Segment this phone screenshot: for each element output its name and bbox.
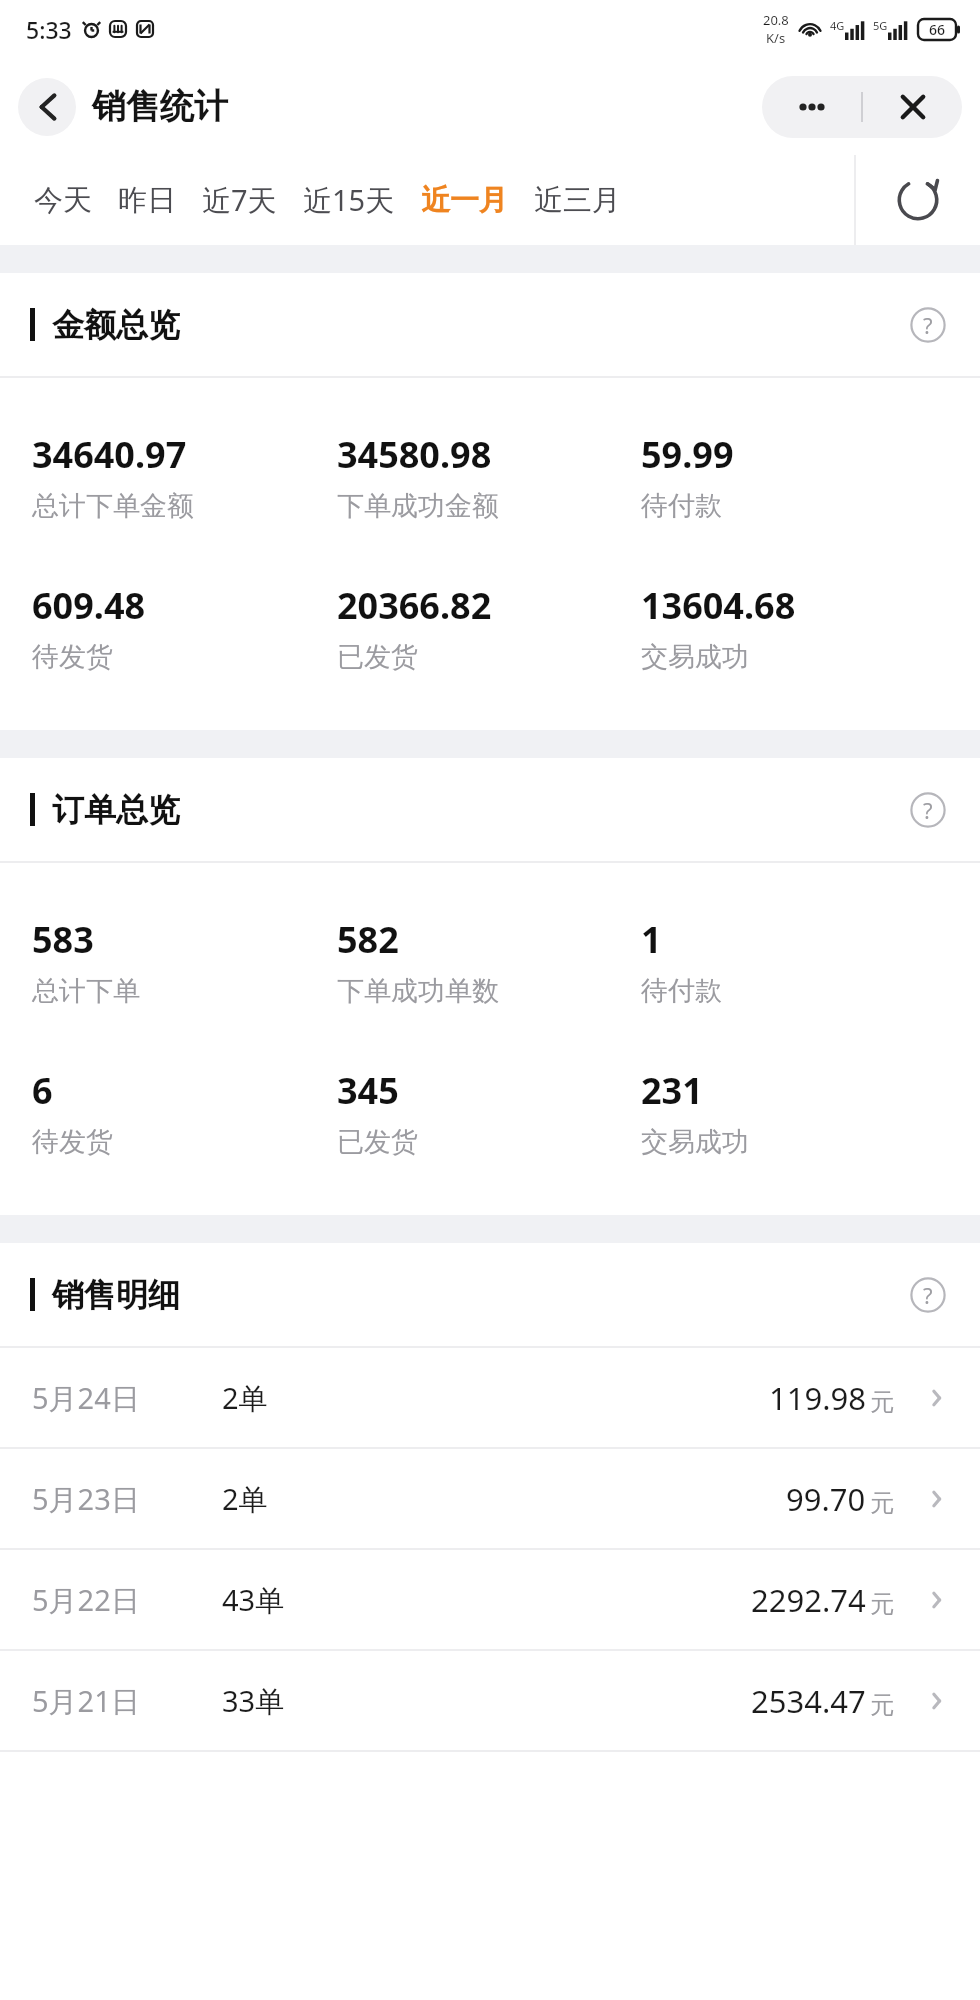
- staticText: 元: [870, 1589, 894, 1619]
- staticText: 34640.97: [32, 430, 187, 479]
- staticText: 近一月: [421, 182, 508, 219]
- button[interactable]: 5月22日: [0, 1550, 980, 1651]
- button[interactable]: Help: [906, 1273, 950, 1317]
- staticText: 下单成功金额: [337, 489, 499, 523]
- staticText: 元: [870, 1488, 894, 1518]
- staticText: 交易成功: [641, 1125, 749, 1159]
- button[interactable]: 今天: [34, 155, 92, 245]
- button[interactable]: Refresh: [856, 155, 980, 245]
- staticText: 元: [870, 1690, 894, 1720]
- staticText: 345: [337, 1066, 399, 1115]
- staticText: 金额总览: [52, 305, 180, 345]
- staticText: 583: [32, 915, 94, 964]
- staticText: 销售明细: [52, 1275, 180, 1315]
- button[interactable]: 近一月: [421, 155, 508, 245]
- button[interactable]: Help: [906, 303, 950, 347]
- staticText: 231: [641, 1066, 703, 1115]
- staticText: 已发货: [337, 640, 418, 674]
- staticText: 99.70: [786, 1478, 866, 1520]
- staticText: 总计下单金额: [32, 489, 194, 523]
- button[interactable]: 5月23日: [0, 1449, 980, 1550]
- staticText: 33单: [222, 1681, 452, 1721]
- staticText: ?: [923, 1280, 933, 1310]
- button[interactable]: 昨日: [118, 155, 176, 245]
- button[interactable]: Help: [906, 788, 950, 832]
- staticText: 近三月: [534, 182, 621, 219]
- staticText: 待发货: [32, 1125, 113, 1159]
- button[interactable]: 5月21日: [0, 1651, 980, 1752]
- staticText: 119.98: [769, 1377, 866, 1419]
- staticText: 582: [337, 915, 399, 964]
- staticText: 待发货: [32, 640, 113, 674]
- staticText: 总计下单: [32, 974, 140, 1008]
- staticText: 6: [32, 1066, 53, 1115]
- button[interactable]: 5月24日: [0, 1348, 980, 1449]
- staticText: 66: [929, 20, 946, 39]
- staticText: 已发货: [337, 1125, 418, 1159]
- staticText: 5月22日: [32, 1580, 222, 1620]
- staticText: 1: [641, 915, 662, 964]
- staticText: 5月24日: [32, 1378, 222, 1418]
- button[interactable]: 近三月: [534, 155, 621, 245]
- staticText: 5G: [873, 18, 888, 33]
- staticText: 20.8: [763, 11, 789, 29]
- staticText: 2单: [222, 1378, 452, 1418]
- button[interactable]: More options: [762, 76, 861, 138]
- staticText: 2292.74: [751, 1579, 866, 1621]
- staticText: K/s: [766, 29, 786, 47]
- staticText: 5:33: [26, 14, 72, 45]
- button[interactable]: 近7天: [202, 155, 277, 245]
- button[interactable]: 近15天: [303, 155, 395, 245]
- staticText: 43单: [222, 1580, 452, 1620]
- staticText: 59.99: [641, 430, 734, 479]
- staticText: 2534.47: [751, 1680, 866, 1722]
- staticText: 20366.82: [337, 581, 492, 630]
- staticText: 待付款: [641, 974, 722, 1008]
- staticText: 2单: [222, 1479, 452, 1519]
- staticText: 5月21日: [32, 1681, 222, 1721]
- button[interactable]: Close: [863, 76, 962, 138]
- staticText: 5月23日: [32, 1479, 222, 1519]
- staticText: 元: [870, 1387, 894, 1417]
- staticText: 订单总览: [52, 790, 180, 830]
- staticText: 销售统计: [92, 85, 228, 128]
- staticText: 34580.98: [337, 430, 492, 479]
- staticText: 4G: [830, 18, 845, 33]
- staticText: ?: [923, 310, 933, 340]
- staticText: 近15天: [303, 180, 395, 220]
- button[interactable]: Back: [18, 78, 76, 136]
- staticText: ?: [923, 795, 933, 825]
- staticText: 609.48: [32, 581, 146, 630]
- staticText: 近7天: [202, 180, 277, 220]
- staticText: 昨日: [118, 182, 176, 219]
- staticText: 交易成功: [641, 640, 749, 674]
- staticText: 下单成功单数: [337, 974, 499, 1008]
- staticText: 今天: [34, 182, 92, 219]
- staticText: 待付款: [641, 489, 722, 523]
- staticText: 13604.68: [641, 581, 796, 630]
